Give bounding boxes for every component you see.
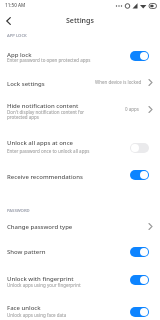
button[interactable]	[130, 143, 149, 153]
staticText: Enter password once to unlock all apps	[7, 148, 90, 154]
staticText: App lock	[7, 51, 32, 59]
staticText: Change password type	[7, 223, 73, 231]
staticText: Don't display notification content for	[7, 109, 85, 115]
button[interactable]	[0, 268, 160, 294]
staticText: Enter password to open protected apps	[7, 57, 91, 63]
button[interactable]	[130, 275, 149, 285]
staticText: 11:50 AM	[5, 2, 26, 8]
staticText: Unlock apps using your fingerprint	[7, 282, 81, 288]
staticText: Face unlock	[7, 304, 41, 312]
button[interactable]	[0, 72, 160, 94]
button[interactable]	[0, 298, 160, 320]
button[interactable]	[0, 216, 160, 238]
staticText: Settings	[66, 16, 94, 26]
staticText: When device is locked	[95, 79, 142, 85]
button[interactable]	[130, 51, 149, 61]
staticText: Show pattern	[7, 248, 46, 256]
staticText: protected apps	[7, 114, 39, 120]
staticText: Receive recommendations	[7, 173, 83, 181]
staticText: Unlock all apps at once	[7, 139, 74, 147]
staticText: Unlock with fingerprint	[7, 275, 74, 283]
button[interactable]	[130, 247, 149, 257]
button[interactable]	[130, 170, 149, 180]
button[interactable]	[0, 240, 160, 262]
staticText: Lock settings	[7, 80, 45, 88]
staticText: APP LOCK	[7, 33, 27, 39]
button[interactable]	[0, 132, 160, 158]
staticText: 0 apps	[125, 106, 139, 112]
button[interactable]	[0, 96, 160, 124]
staticText: Hide notification content	[7, 102, 79, 110]
button[interactable]	[130, 307, 149, 317]
button[interactable]	[0, 164, 160, 186]
button[interactable]	[6, 17, 11, 25]
button[interactable]	[0, 44, 160, 68]
staticText: Unlock apps using face data	[7, 312, 67, 318]
staticText: PASSWORD	[7, 208, 30, 214]
